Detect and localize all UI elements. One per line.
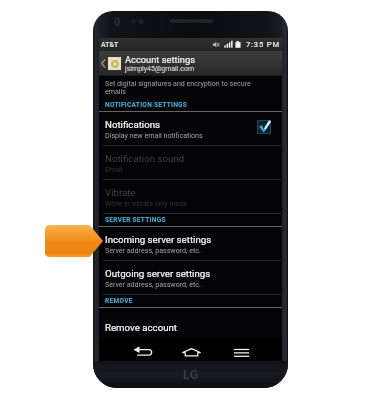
staticText: emails — [105, 87, 126, 95]
button[interactable]: Menu — [233, 346, 250, 359]
button[interactable]: Outgoing server settings — [99, 261, 282, 294]
staticText: Display new email notifications — [105, 131, 203, 139]
staticText: NOTIFICATION SETTINGS — [105, 101, 188, 109]
staticText: SERVER SETTINGS — [105, 216, 166, 224]
button[interactable]: Notification sound — [99, 146, 282, 179]
staticText: REMOVE — [105, 297, 133, 305]
staticText: Remove account — [105, 322, 178, 333]
button[interactable]: Home — [182, 346, 201, 359]
staticText: While in vibrate only mode — [105, 199, 188, 207]
staticText: LG — [183, 367, 199, 382]
staticText: Email — [105, 165, 123, 173]
staticText: Notifications — [105, 119, 161, 130]
staticText: AT&T — [101, 41, 119, 49]
other: Navigate up — [100, 57, 106, 70]
staticText: jsimply45@gmail.com — [125, 65, 195, 73]
staticText: Vibrate — [105, 187, 136, 198]
staticText: Account settings — [125, 54, 195, 65]
button[interactable]: Back — [133, 346, 154, 359]
button[interactable]: Navigate up — [99, 51, 282, 76]
staticText: Server address, password, etc. — [105, 246, 201, 254]
button[interactable]: Incoming server settings — [99, 227, 282, 260]
button[interactable]: Vibrate — [99, 180, 282, 213]
button[interactable]: Remove account — [99, 308, 282, 346]
staticText: 7:35 PM — [246, 40, 280, 49]
staticText: Outgoing server settings — [105, 268, 211, 279]
button[interactable]: Notifications — [99, 112, 282, 145]
staticText: Notification sound — [105, 153, 185, 164]
staticText: Server address, password, etc. — [105, 280, 201, 288]
staticText: Set digital signatures and encryption to… — [105, 79, 251, 87]
staticText: Incoming server settings — [105, 234, 212, 245]
